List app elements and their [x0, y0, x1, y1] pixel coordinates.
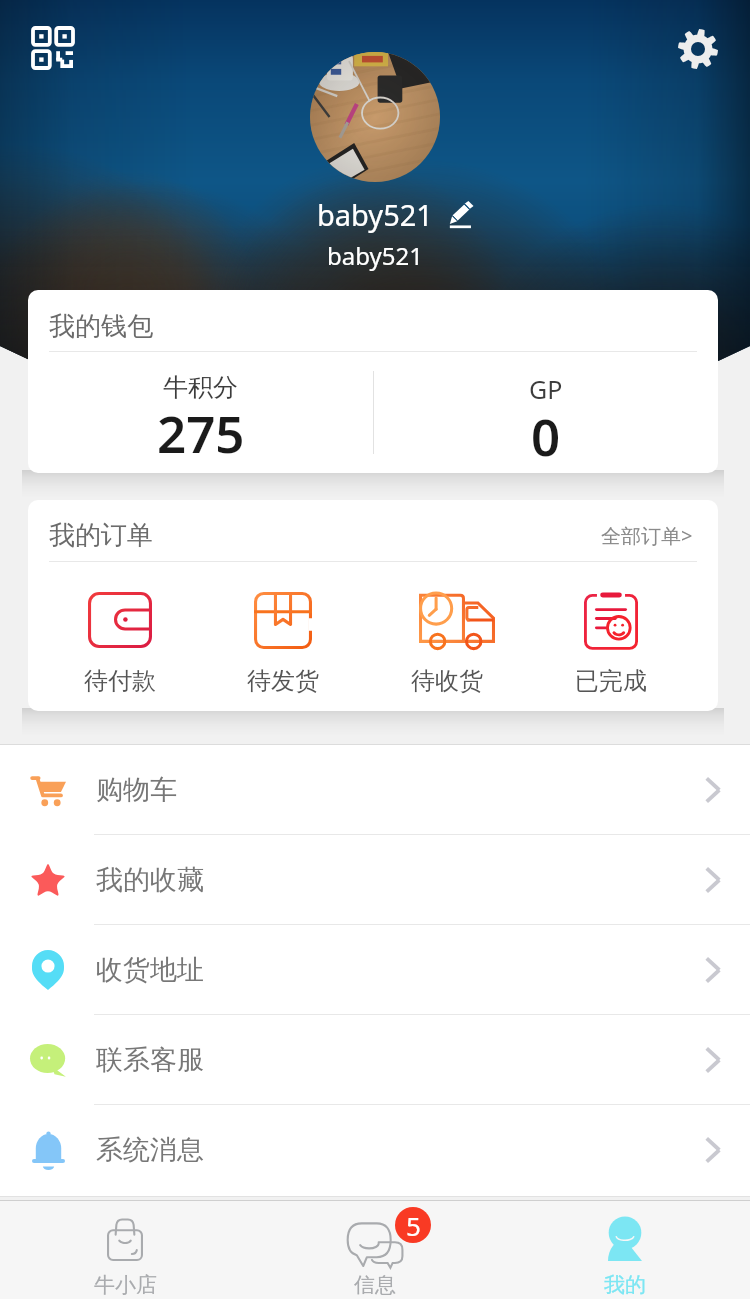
staticText: 待发货: [247, 666, 319, 696]
staticText: baby521: [317, 195, 433, 234]
button[interactable]: 联系客服: [0, 1015, 750, 1105]
staticText: 我的钱包: [49, 310, 153, 343]
button[interactable]: 全部订单>: [601, 522, 693, 549]
button[interactable]: 牛小店: [0, 1201, 250, 1299]
staticText: 5: [406, 1208, 421, 1243]
staticText: 系统消息: [96, 1133, 204, 1167]
staticText: 购物车: [96, 773, 177, 807]
button[interactable]: Profile photo: [310, 52, 440, 182]
staticText: baby521: [327, 239, 423, 272]
staticText: 牛积分: [163, 372, 238, 403]
staticText: GP: [529, 372, 563, 406]
button[interactable]: 我的: [500, 1201, 750, 1299]
button[interactable]: 待付款: [38, 562, 201, 711]
button[interactable]: 5: [250, 1201, 500, 1299]
staticText: 信息: [354, 1272, 396, 1298]
staticText: 275: [157, 398, 245, 467]
staticText: 我的: [604, 1272, 646, 1298]
button[interactable]: 系统消息: [0, 1105, 750, 1195]
button[interactable]: 购物车: [0, 745, 750, 835]
staticText: 待收货: [411, 666, 483, 696]
button[interactable]: 待发货: [201, 562, 365, 711]
staticText: 0: [531, 401, 561, 468]
staticText: 全部订单>: [601, 522, 693, 549]
button[interactable]: 我的收藏: [0, 835, 750, 925]
staticText: 我的订单: [49, 519, 153, 552]
button[interactable]: 待收货: [365, 562, 529, 711]
button[interactable]: 已完成: [529, 562, 693, 711]
button[interactable]: baby521: [0, 193, 750, 235]
button[interactable]: Scan QR code: [26, 21, 80, 75]
button[interactable]: 收货地址: [0, 925, 750, 1015]
staticText: 待付款: [84, 666, 156, 696]
staticText: 收货地址: [96, 953, 204, 987]
button[interactable]: GP: [373, 352, 718, 473]
button[interactable]: Settings: [671, 22, 725, 76]
staticText: 我的收藏: [96, 863, 204, 897]
staticText: 已完成: [575, 666, 647, 696]
button[interactable]: Edit profile name: [446, 198, 478, 230]
staticText: 牛小店: [94, 1272, 157, 1298]
staticText: 联系客服: [96, 1043, 204, 1077]
button[interactable]: 牛积分: [28, 352, 373, 473]
